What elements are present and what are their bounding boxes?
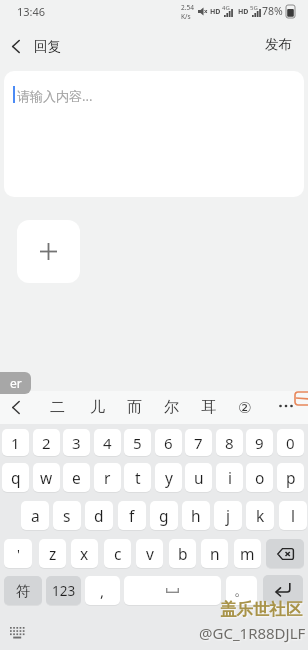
staticText: 而 <box>127 398 142 417</box>
button[interactable]: l <box>279 501 307 530</box>
staticText: , <box>100 581 105 601</box>
staticText: 123 <box>52 582 76 600</box>
staticText: k <box>256 505 265 526</box>
button[interactable]: 7 <box>185 429 212 456</box>
button[interactable]: 3 <box>63 429 90 456</box>
button[interactable]: 123 <box>46 576 81 605</box>
button[interactable] <box>4 395 28 419</box>
button[interactable]: a <box>21 501 49 530</box>
button[interactable]: o <box>246 463 273 492</box>
button[interactable]: 8 <box>216 429 243 456</box>
button[interactable]: 5 <box>124 429 151 456</box>
staticText: 4 <box>103 433 112 453</box>
button[interactable]: 2 <box>33 429 60 456</box>
button[interactable]: p <box>277 463 304 492</box>
button[interactable]: 二 <box>43 393 71 421</box>
button[interactable]: n <box>201 539 228 568</box>
button[interactable]: i <box>216 463 243 492</box>
button[interactable]: 。 <box>226 576 257 605</box>
staticText: p <box>286 467 296 488</box>
button[interactable]: u <box>185 463 212 492</box>
staticText: 3 <box>72 433 81 453</box>
button[interactable]: q <box>2 463 29 492</box>
button[interactable]: 儿 <box>83 393 111 421</box>
staticText: b <box>178 543 188 564</box>
staticText: o <box>255 467 265 488</box>
staticText: er <box>10 375 22 391</box>
staticText: i <box>228 467 232 488</box>
button[interactable]: 而 <box>120 393 148 421</box>
button[interactable]: f <box>118 501 146 530</box>
button[interactable]: v <box>136 539 163 568</box>
button[interactable]: r <box>94 463 121 492</box>
button[interactable] <box>278 398 296 414</box>
button[interactable] <box>124 576 221 605</box>
staticText: 8 <box>225 433 234 453</box>
staticText: 符 <box>16 582 31 600</box>
button[interactable] <box>266 539 304 568</box>
staticText: c <box>114 543 122 564</box>
button[interactable]: 请输入内容... <box>4 71 304 197</box>
staticText: HD <box>210 7 221 17</box>
staticText: 4G <box>222 4 230 12</box>
staticText: ' <box>17 545 20 563</box>
staticText: s <box>63 505 71 526</box>
button[interactable]: , <box>85 576 120 605</box>
staticText: j <box>226 505 230 526</box>
staticText: z <box>49 543 57 564</box>
staticText: 儿 <box>90 398 105 417</box>
staticText: 5G <box>250 4 258 12</box>
staticText: 6 <box>164 433 173 453</box>
staticText: m <box>240 543 255 564</box>
staticText: 二 <box>50 398 65 417</box>
button[interactable]: 耳 <box>194 393 222 421</box>
button[interactable]: t <box>124 463 151 492</box>
button[interactable]: j <box>214 501 242 530</box>
staticText: d <box>94 505 104 526</box>
staticText: 78% <box>262 4 283 18</box>
button[interactable] <box>10 627 26 639</box>
staticText: 回复 <box>34 38 61 55</box>
button[interactable]: g <box>150 501 178 530</box>
staticText: 5 <box>133 433 142 453</box>
button[interactable]: 发布 <box>258 31 298 58</box>
staticText: 。 <box>234 581 249 600</box>
staticText: ② <box>238 399 252 416</box>
staticText: 0 <box>286 433 295 453</box>
button[interactable]: s <box>53 501 81 530</box>
staticText: g <box>159 505 169 526</box>
button[interactable]: 6 <box>155 429 182 456</box>
button[interactable]: c <box>104 539 131 568</box>
staticText: y <box>165 467 173 488</box>
button[interactable]: 0 <box>277 429 304 456</box>
button[interactable]: x <box>71 539 98 568</box>
button[interactable] <box>4 34 28 58</box>
button[interactable]: ② <box>231 393 259 421</box>
staticText: 盖乐世社区 <box>220 599 303 620</box>
button[interactable]: y <box>155 463 182 492</box>
button[interactable]: w <box>33 463 60 492</box>
button[interactable]: k <box>246 501 274 530</box>
staticText: r <box>104 467 111 488</box>
button[interactable]: d <box>85 501 113 530</box>
button[interactable] <box>263 575 303 604</box>
button[interactable]: h <box>182 501 210 530</box>
button[interactable] <box>17 220 80 283</box>
button[interactable]: 4 <box>94 429 121 456</box>
button[interactable]: e <box>63 463 90 492</box>
button[interactable]: m <box>234 539 261 568</box>
button[interactable]: ' <box>4 539 32 568</box>
staticText: f <box>129 505 135 526</box>
button[interactable]: 尔 <box>157 393 185 421</box>
staticText: 1 <box>11 433 20 453</box>
staticText: x <box>80 543 89 564</box>
button[interactable]: 9 <box>246 429 273 456</box>
button[interactable]: z <box>39 539 66 568</box>
button[interactable]: b <box>169 539 196 568</box>
staticText: 7 <box>194 433 203 453</box>
staticText: 耳 <box>201 398 216 417</box>
button[interactable]: 1 <box>2 429 29 456</box>
staticText: 尔 <box>164 398 179 417</box>
button[interactable]: 符 <box>4 576 42 605</box>
staticText: a <box>31 505 40 526</box>
